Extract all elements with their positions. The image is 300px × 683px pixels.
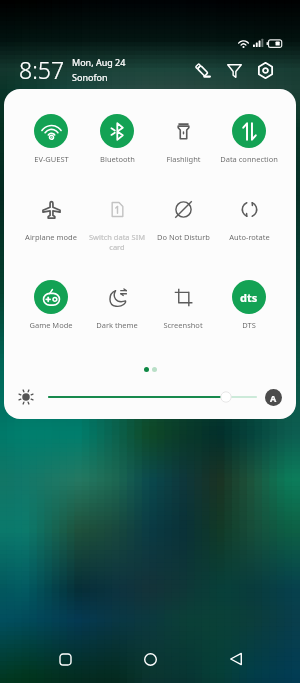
staticText: Dark theme — [96, 320, 138, 330]
button[interactable]: Recents — [44, 638, 86, 680]
staticText: Sonofon — [72, 71, 108, 83]
button[interactable]: Auto brightness — [265, 389, 282, 406]
button[interactable]: Filter — [221, 57, 247, 83]
staticText: Flashlight — [166, 154, 201, 164]
button[interactable]: Dark theme — [84, 280, 150, 330]
staticText: Switch data SIM card — [84, 232, 150, 252]
staticText: Airplane mode — [25, 232, 77, 242]
staticText: EV-GUEST — [34, 154, 69, 164]
staticText: dts — [240, 290, 258, 305]
button[interactable]: Data connection — [216, 114, 282, 164]
staticText: Bluetooth — [100, 154, 135, 164]
staticText: Mon, Aug 24 — [72, 56, 126, 68]
staticText: Data connection — [220, 154, 278, 164]
staticText: Screenshot — [163, 320, 203, 330]
button[interactable]: Bluetooth — [84, 114, 150, 164]
button[interactable]: Home — [129, 638, 171, 680]
staticText: Game Mode — [29, 320, 73, 330]
button[interactable]: Auto-rotate — [216, 192, 282, 242]
button[interactable]: Flashlight — [150, 114, 216, 164]
button[interactable]: Screenshot — [150, 280, 216, 330]
staticText: DTS — [242, 320, 256, 330]
button[interactable]: Airplane mode — [18, 192, 84, 242]
button[interactable]: dts — [216, 280, 282, 330]
button[interactable]: Do Not Disturb — [150, 192, 216, 242]
staticText: A — [270, 392, 277, 404]
staticText: Auto-rotate — [229, 232, 270, 242]
button[interactable]: Edit — [190, 57, 216, 83]
button[interactable]: Switch data SIM card — [84, 192, 150, 252]
button[interactable]: Settings — [252, 57, 278, 83]
button[interactable]: EV-GUEST — [18, 114, 84, 164]
staticText: 8:57 — [19, 54, 65, 85]
button[interactable]: Back — [215, 638, 257, 680]
staticText: Do Not Disturb — [157, 232, 210, 242]
button[interactable]: Game Mode — [18, 280, 84, 330]
